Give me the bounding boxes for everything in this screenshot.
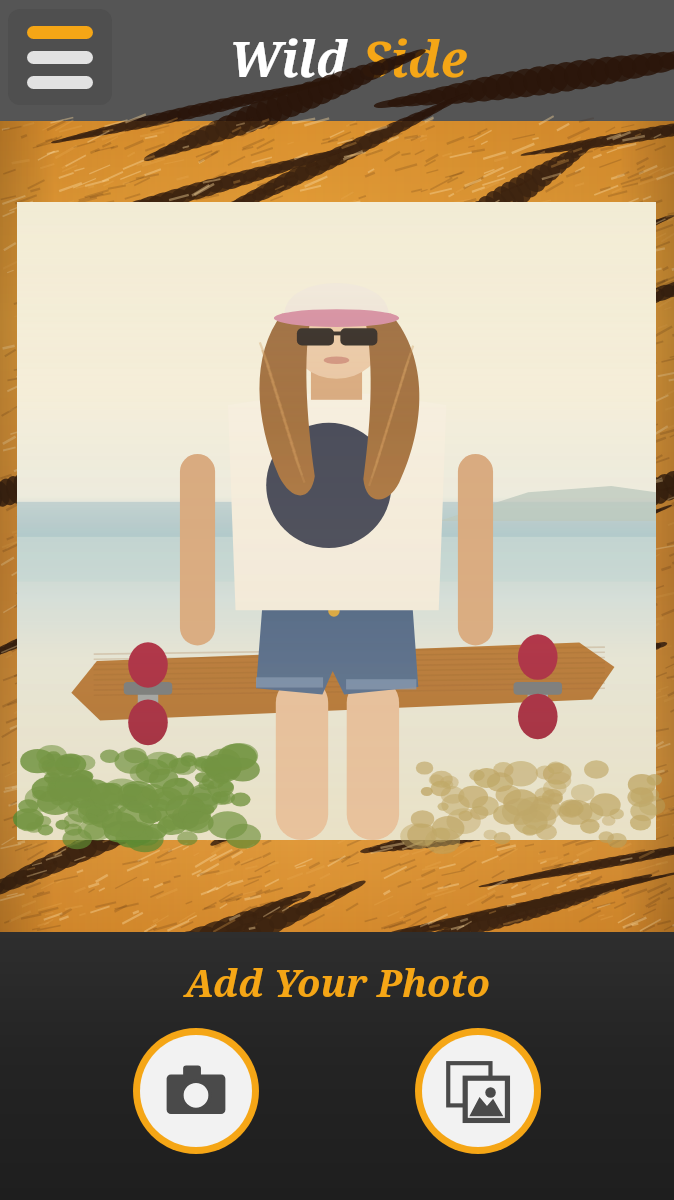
staticText: Add Your Photo bbox=[185, 956, 490, 1008]
staticText: Side bbox=[362, 25, 467, 92]
button[interactable] bbox=[17, 202, 656, 840]
button[interactable]: Choose photo from gallery bbox=[422, 1035, 534, 1147]
staticText: Wild bbox=[229, 25, 362, 92]
button[interactable]: Open menu bbox=[8, 9, 112, 105]
button[interactable]: Take photo with camera bbox=[140, 1035, 252, 1147]
